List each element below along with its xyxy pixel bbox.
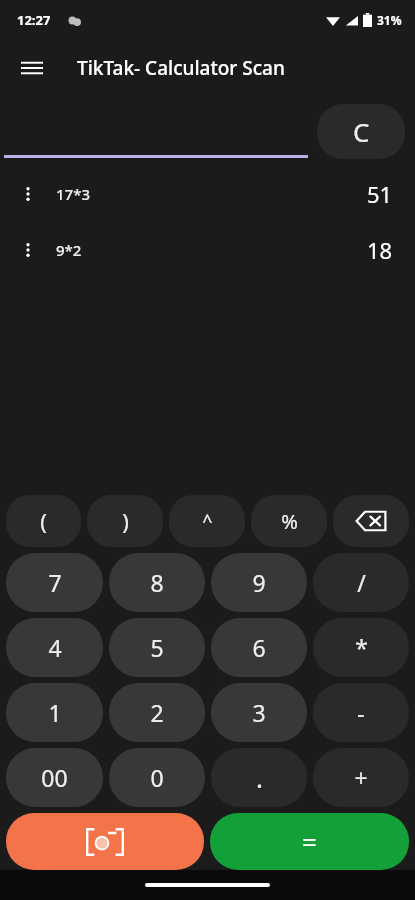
- staticText: TikTak- Calculator Scan: [77, 55, 285, 81]
- staticText: %: [281, 508, 298, 535]
- staticText: C: [353, 114, 370, 149]
- button[interactable]: 1: [6, 683, 103, 742]
- button[interactable]: Backspace: [333, 495, 409, 547]
- button[interactable]: 5: [109, 618, 205, 677]
- other: More options: [0, 166, 56, 222]
- staticText: 18: [367, 235, 393, 265]
- staticText: 17*3: [56, 184, 90, 204]
- staticText: 8: [150, 567, 164, 598]
- button[interactable]: Menu: [10, 46, 54, 90]
- staticText: 6: [252, 632, 266, 663]
- staticText: 9*2: [56, 240, 82, 260]
- button[interactable]: 9: [211, 553, 307, 612]
- staticText: (: [40, 506, 47, 536]
- staticText: =: [302, 824, 317, 859]
- button[interactable]: Scan with camera: [6, 813, 204, 870]
- staticText: 1: [48, 697, 62, 728]
- button[interactable]: -: [313, 683, 409, 742]
- staticText: 4: [48, 632, 62, 663]
- button[interactable]: +: [313, 748, 409, 807]
- staticText: 5: [150, 632, 164, 663]
- button[interactable]: 4: [6, 618, 103, 677]
- button[interactable]: 0: [109, 748, 205, 807]
- staticText: ^: [202, 509, 213, 534]
- button[interactable]: *: [313, 618, 409, 677]
- button[interactable]: 7: [6, 553, 103, 612]
- button[interactable]: /: [313, 553, 409, 612]
- staticText: 9: [252, 567, 266, 598]
- staticText: 2: [150, 697, 164, 728]
- staticText: 00: [41, 762, 68, 793]
- button[interactable]: %: [251, 495, 327, 547]
- button[interactable]: =: [210, 813, 409, 870]
- button[interactable]: 8: [109, 553, 205, 612]
- staticText: 31%: [377, 12, 402, 28]
- button[interactable]: More options: [0, 222, 415, 278]
- staticText: 51: [367, 179, 393, 209]
- button[interactable]: 6: [211, 618, 307, 677]
- button[interactable]: .: [211, 748, 307, 807]
- staticText: *: [355, 632, 368, 663]
- button[interactable]: ): [87, 495, 163, 547]
- staticText: 7: [48, 567, 62, 598]
- staticText: .: [256, 760, 263, 795]
- button[interactable]: C: [317, 104, 405, 159]
- staticText: ): [122, 506, 129, 536]
- staticText: +: [354, 762, 368, 793]
- button[interactable]: 2: [109, 683, 205, 742]
- button[interactable]: ^: [169, 495, 245, 547]
- button[interactable]: 3: [211, 683, 307, 742]
- staticText: -: [357, 697, 365, 728]
- staticText: 0: [150, 762, 164, 793]
- button[interactable]: More options: [0, 166, 415, 222]
- button[interactable]: (: [6, 495, 81, 547]
- staticText: 12:27: [17, 11, 51, 29]
- other: More options: [0, 222, 56, 278]
- staticText: 3: [252, 697, 266, 728]
- staticText: /: [357, 567, 366, 598]
- button[interactable]: 00: [6, 748, 103, 807]
